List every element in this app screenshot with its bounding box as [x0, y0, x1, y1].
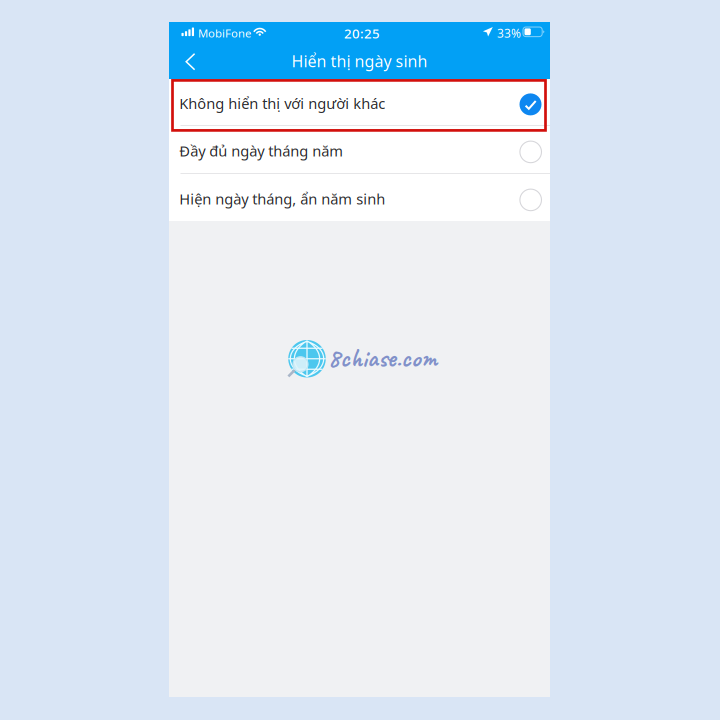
staticText: Đầy đủ ngày tháng năm — [179, 141, 343, 161]
button[interactable]: Hiện ngày tháng, ẩn năm sinh — [169, 174, 550, 221]
staticText: 8chiase.com — [328, 341, 437, 374]
staticText: MobiFone — [198, 25, 251, 41]
button[interactable]: Back — [173, 44, 207, 80]
staticText: Hiển thị ngày sinh — [291, 50, 427, 72]
button[interactable]: Không hiển thị với người khác — [169, 79, 550, 126]
staticText: 20:25 — [344, 24, 380, 42]
staticText: 33% — [497, 25, 521, 41]
staticText: Không hiển thị với người khác — [179, 93, 385, 113]
staticText: Hiện ngày tháng, ẩn năm sinh — [179, 189, 385, 209]
button[interactable]: Đầy đủ ngày tháng năm — [169, 126, 550, 174]
